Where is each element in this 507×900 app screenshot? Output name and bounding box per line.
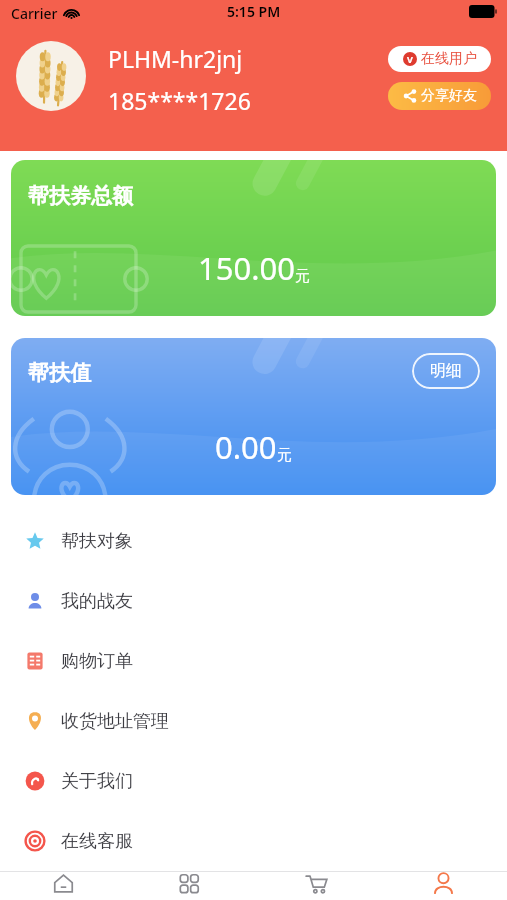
staticText: 元 [277,446,292,465]
staticText: 150.00 [198,247,295,289]
button[interactable]: 收货地址管理 [0,691,507,751]
button[interactable]: 在线客服 [0,811,507,871]
button[interactable]: 我的战友 [0,571,507,631]
button[interactable]: 分享好友 [388,82,491,110]
button[interactable]: 帮扶对象 [0,511,507,571]
staticText: 我的战友 [61,590,133,613]
staticText: 5:15 PM [227,2,281,21]
button[interactable]: 帮扶值 [11,338,496,495]
button[interactable]: 明细 [412,353,480,389]
button[interactable]: 我的 [380,872,507,900]
staticText: 在线用户 [421,50,477,68]
staticText: 关于我们 [61,770,133,793]
staticText: 收货地址管理 [61,710,169,733]
button[interactable]: 购物车 [253,872,380,900]
button[interactable]: Profile avatar [16,41,86,111]
button[interactable]: 分类 [126,872,253,900]
staticText: 185****1726 [108,85,251,116]
staticText: 明细 [430,361,462,381]
staticText: 帮扶值 [28,360,91,386]
button[interactable]: 关于我们 [0,751,507,811]
staticText: 元 [295,267,310,286]
staticText: 在线客服 [61,830,133,853]
staticText: 帮扶券总额 [28,183,133,209]
button[interactable]: 首页 [0,872,126,900]
button[interactable]: 帮扶券总额 [11,160,496,316]
staticText: Carrier [11,4,58,23]
staticText: V [407,53,413,65]
button[interactable]: V [388,46,491,72]
button[interactable]: 购物订单 [0,631,507,691]
staticText: 购物订单 [61,650,133,673]
staticText: 0.00 [215,426,277,468]
staticText: 帮扶对象 [61,530,133,553]
staticText: 分享好友 [421,87,477,105]
staticText: PLHM-hr2jnj [108,43,243,74]
